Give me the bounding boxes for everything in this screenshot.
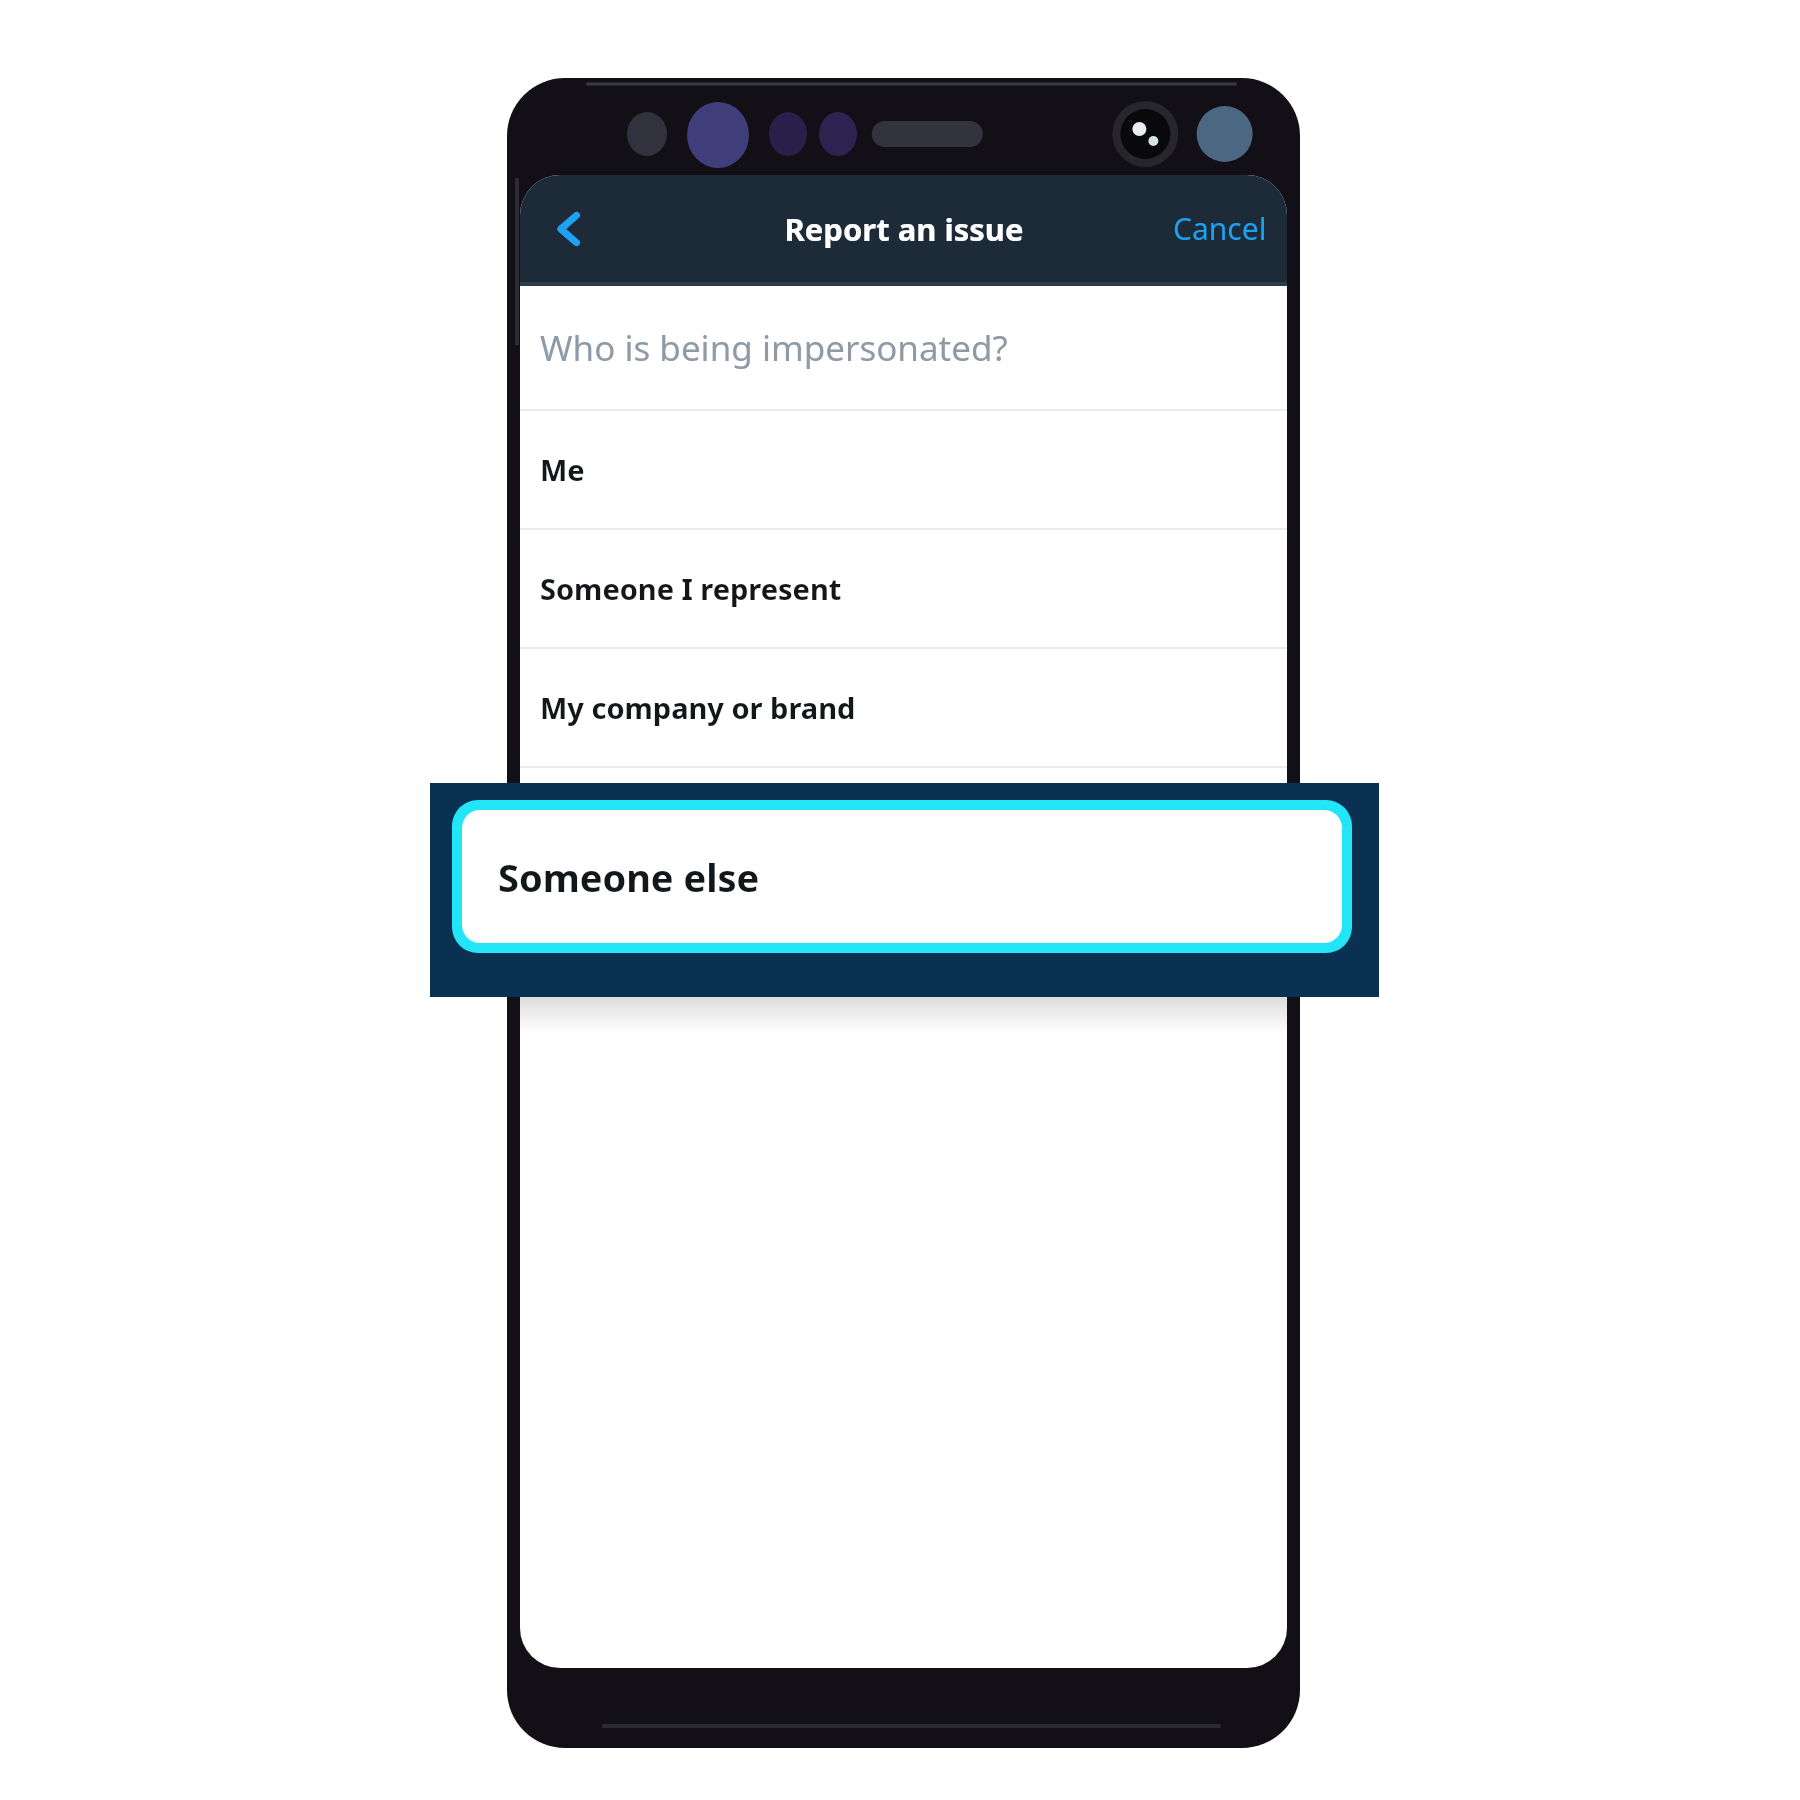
button[interactable] xyxy=(520,768,1287,898)
button[interactable]: Someone I represent xyxy=(520,530,1287,647)
button[interactable]: Back xyxy=(534,194,604,264)
staticText: Cancel xyxy=(1173,208,1267,249)
button[interactable]: Me xyxy=(520,411,1287,528)
staticText: Someone else xyxy=(498,851,760,903)
button[interactable]: Who is being impersonated? xyxy=(520,286,1287,409)
button[interactable]: My company or brand xyxy=(520,649,1287,766)
staticText: Report an issue xyxy=(784,208,1024,250)
button[interactable]: Someone else xyxy=(452,800,1352,953)
staticText: My company or brand xyxy=(540,688,856,727)
button[interactable]: Cancel xyxy=(1153,194,1287,263)
staticText: Me xyxy=(540,450,585,489)
staticText: Someone I represent xyxy=(540,569,842,608)
staticText: Who is being impersonated? xyxy=(540,324,1008,372)
